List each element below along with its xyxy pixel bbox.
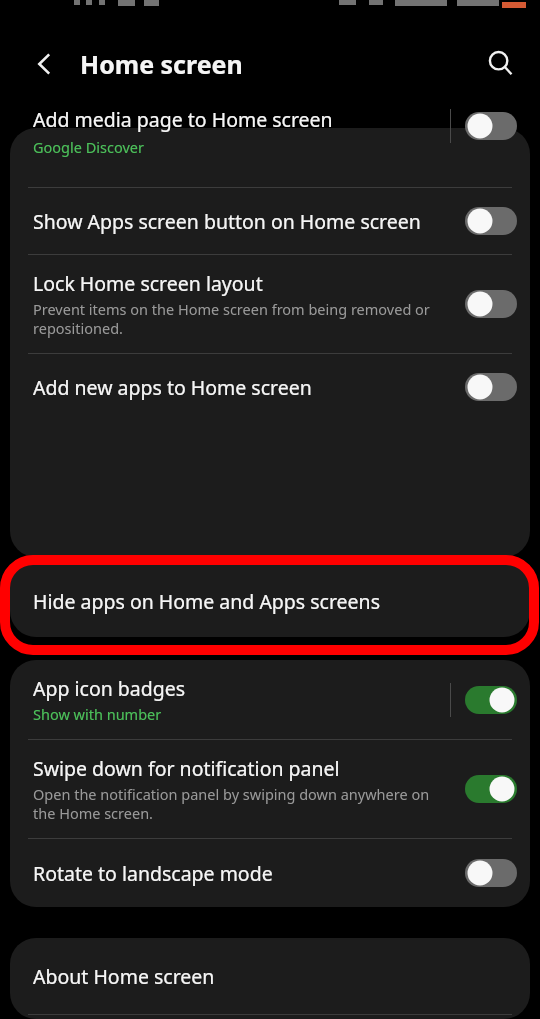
- button[interactable]: Show Apps screen button on Home screen: [10, 188, 530, 254]
- staticText: About Home screen: [33, 963, 215, 990]
- button[interactable]: Add new apps to Home screen: [10, 354, 530, 420]
- button[interactable]: [464, 288, 518, 320]
- staticText: Show with number: [33, 704, 162, 724]
- button[interactable]: [464, 857, 518, 889]
- staticText: Show Apps screen button on Home screen: [33, 208, 421, 235]
- button[interactable]: Rotate to landscape mode: [10, 839, 530, 907]
- button[interactable]: App icon badges: [10, 660, 530, 739]
- button[interactable]: Lock Home screen layout: [10, 255, 530, 353]
- staticText: App icon badges: [33, 675, 186, 702]
- button[interactable]: Add media page to Home screen: [10, 115, 530, 187]
- staticText: Lock Home screen layout: [33, 270, 263, 297]
- staticText: Home screen: [80, 47, 243, 81]
- staticText: Add media page to Home screen: [33, 106, 333, 133]
- button[interactable]: Swipe down for notification panel: [10, 740, 530, 838]
- staticText: Swipe down for notification panel: [33, 755, 340, 782]
- button[interactable]: Back: [19, 38, 71, 90]
- button[interactable]: [464, 371, 518, 403]
- staticText: Open the notification panel by swiping d…: [33, 784, 454, 823]
- staticText: Add new apps to Home screen: [33, 374, 312, 401]
- staticText: Google Discover: [33, 137, 144, 157]
- button[interactable]: Hide apps on Home and Apps screens: [10, 565, 530, 637]
- button[interactable]: Search: [475, 38, 527, 90]
- staticText: Prevent items on the Home screen from be…: [33, 299, 454, 338]
- button[interactable]: [464, 773, 518, 805]
- button[interactable]: About Home screen: [10, 938, 530, 1014]
- staticText: Hide apps on Home and Apps screens: [33, 588, 381, 615]
- button[interactable]: [464, 684, 518, 716]
- button[interactable]: [464, 110, 518, 142]
- staticText: Rotate to landscape mode: [33, 860, 273, 887]
- button[interactable]: [464, 205, 518, 237]
